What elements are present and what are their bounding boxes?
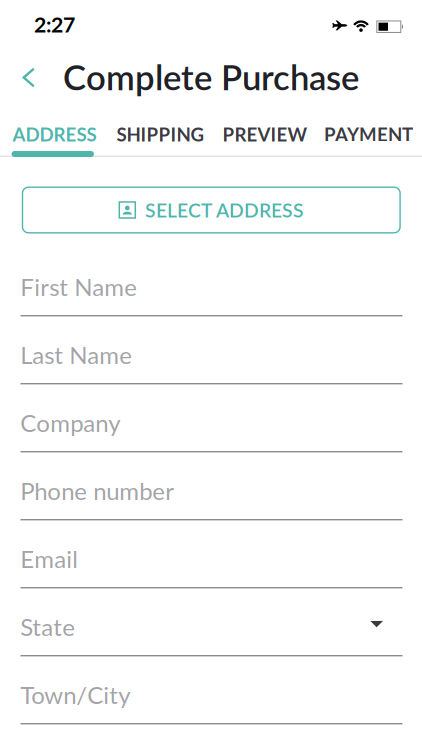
staticText: Email [20, 544, 78, 573]
staticText: PAYMENT [324, 123, 413, 145]
button[interactable]: SELECT ADDRESS [22, 186, 401, 233]
staticText: SELECT ADDRESS [145, 198, 304, 222]
staticText: 2:27 [34, 11, 75, 37]
button[interactable]: PREVIEW [222, 123, 307, 145]
staticText: Last Name [20, 340, 132, 369]
staticText: PREVIEW [222, 123, 307, 145]
button[interactable]: PAYMENT [324, 123, 413, 145]
staticText: Phone number [20, 476, 174, 505]
staticText: Town/City [20, 680, 130, 709]
button[interactable]: SHIPPING [116, 123, 204, 145]
button[interactable]: Back [0, 57, 49, 97]
staticText: ADDRESS [12, 123, 96, 145]
staticText: First Name [20, 272, 137, 301]
staticText: State [20, 612, 75, 641]
button[interactable]: ADDRESS [12, 123, 96, 145]
button[interactable]: State [0, 588, 422, 656]
staticText: Company [20, 408, 120, 437]
staticText: Complete Purchase [63, 56, 359, 98]
staticText: SHIPPING [116, 123, 204, 145]
